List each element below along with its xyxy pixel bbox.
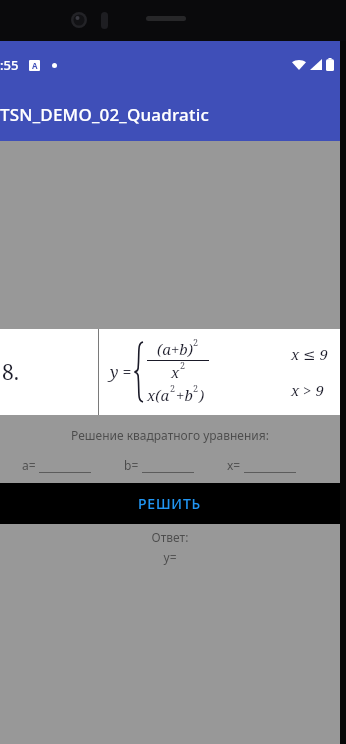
button[interactable]: TSN_DEMO_02_Quadratic xyxy=(0,88,340,141)
staticText: a= xyxy=(22,457,36,473)
staticText: x ≤ 9 xyxy=(291,344,328,364)
staticText: 2 xyxy=(180,359,186,371)
button[interactable]: РЕШИТЬ xyxy=(0,483,340,524)
button[interactable]: 8. xyxy=(0,329,340,415)
staticText: x(a xyxy=(147,385,170,405)
staticText: +b xyxy=(176,385,193,405)
button[interactable]: x= xyxy=(227,457,330,473)
staticText: x xyxy=(171,362,180,382)
staticText: x > 9 xyxy=(291,380,324,400)
staticText: b= xyxy=(124,457,139,473)
staticText: A xyxy=(32,60,38,71)
staticText: TSN_DEMO_02_Quadratic xyxy=(0,103,209,126)
staticText: x= xyxy=(227,457,241,473)
staticText: 8. xyxy=(2,358,19,387)
staticText: (a+b) xyxy=(157,339,193,359)
staticText: Решение квадратного уравнения: xyxy=(0,427,340,443)
staticText: :55 xyxy=(0,56,19,74)
button[interactable]: a= xyxy=(22,457,124,473)
staticText: 2 xyxy=(193,336,199,348)
button[interactable]: b= xyxy=(124,457,227,473)
staticText: ) xyxy=(199,385,205,405)
staticText: 2 xyxy=(170,382,176,394)
staticText: y= xyxy=(0,549,340,565)
staticText: 2 xyxy=(193,382,199,394)
staticText: y = xyxy=(110,361,132,383)
staticText: Ответ: xyxy=(0,529,340,545)
staticText: РЕШИТЬ xyxy=(138,494,202,513)
